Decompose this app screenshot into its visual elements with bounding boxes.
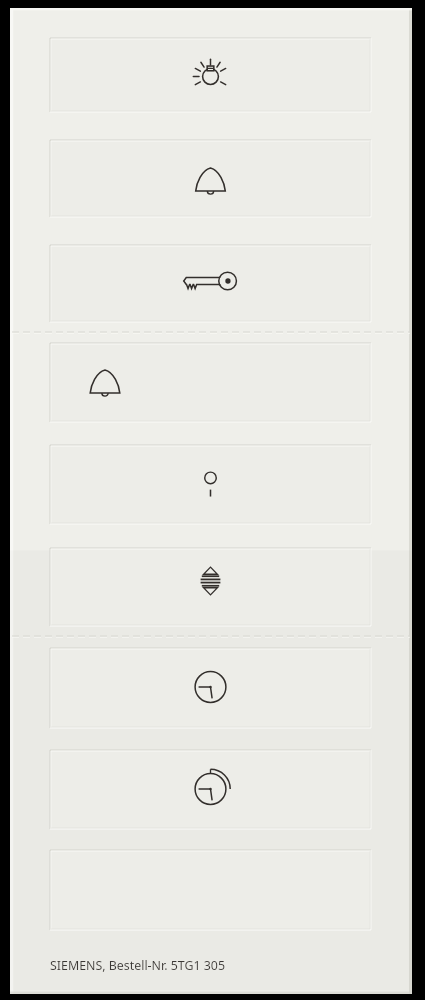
button[interactable]: Light switch label [50, 38, 371, 112]
button[interactable]: Clock label [50, 648, 371, 728]
button[interactable]: Bell label [50, 343, 371, 422]
staticText: SIEMENS, Bestell-Nr. 5TG1 305 [50, 957, 226, 974]
button[interactable]: Push button label [50, 445, 371, 524]
button[interactable]: Bell label [50, 140, 371, 217]
button[interactable]: Key label [50, 245, 371, 322]
button[interactable]: Timer label [50, 750, 371, 829]
button[interactable]: Blinds label [50, 548, 371, 626]
